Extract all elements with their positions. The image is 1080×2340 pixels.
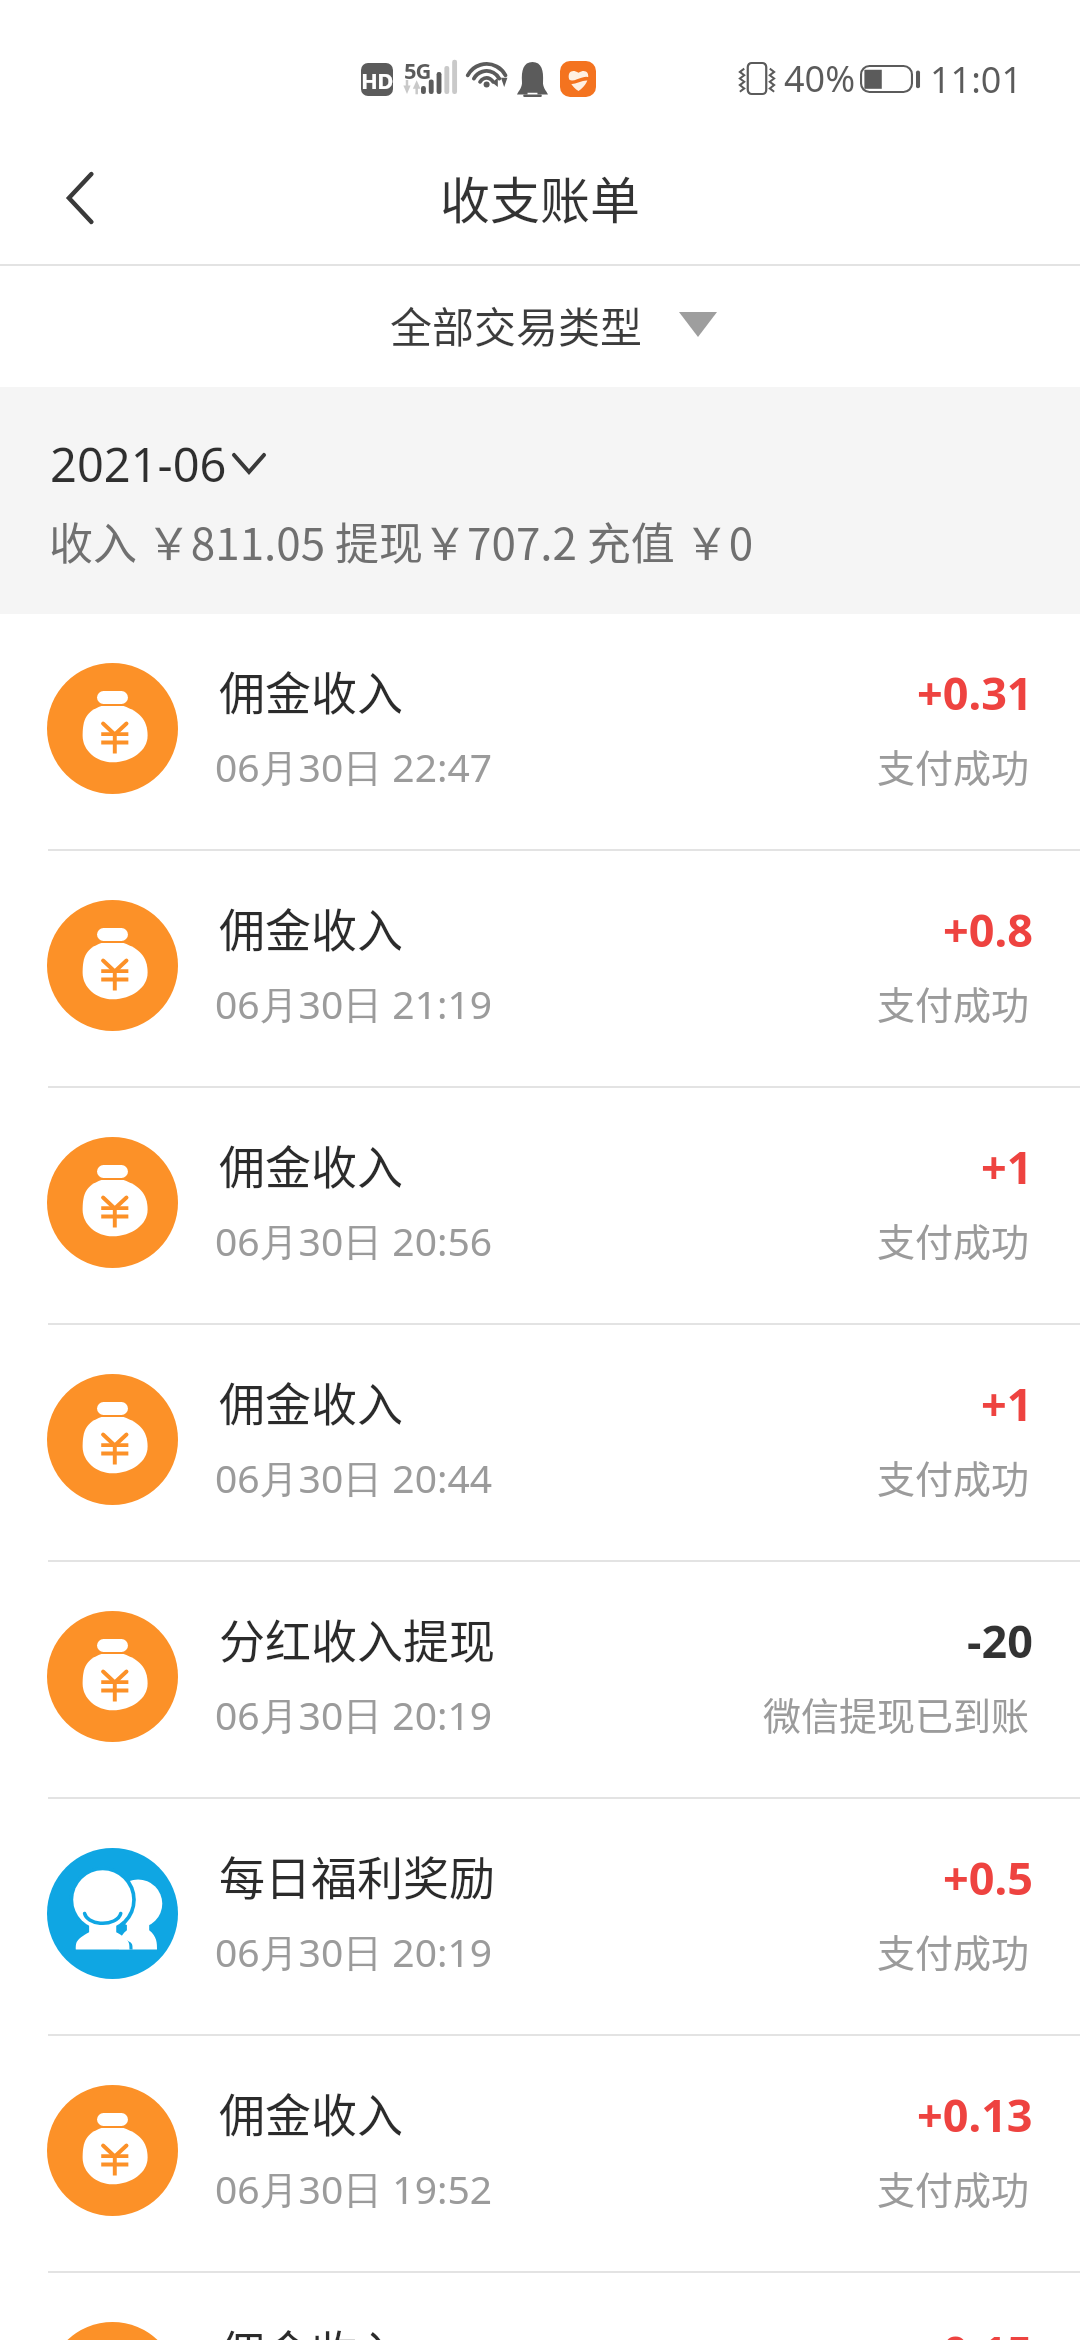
button[interactable]: 2021-06 — [34, 426, 280, 502]
button[interactable]: 佣金收入 — [0, 614, 1080, 849]
staticText: 佣金收入 — [219, 1368, 403, 1435]
button[interactable]: 佣金收入 — [0, 2036, 1080, 2271]
button[interactable]: 全部交易类型 — [370, 280, 737, 369]
staticText: +0.13 — [917, 2084, 1033, 2145]
staticText: 佣金收入 — [219, 894, 403, 961]
staticText: 06月30日 20:19 — [215, 1925, 493, 1978]
staticText: 佣金收入 — [219, 1131, 403, 1198]
button[interactable]: 佣金收入 — [0, 851, 1080, 1086]
staticText: 支付成功 — [877, 1212, 1030, 1267]
staticText: 5G — [404, 55, 431, 85]
button[interactable]: 分红收入提现 — [0, 1562, 1080, 1797]
staticText: 收支账单 — [440, 161, 640, 233]
staticText: 支付成功 — [877, 1923, 1030, 1978]
staticText: 06月30日 19:52 — [215, 2162, 493, 2215]
staticText: 11:01 — [930, 55, 1023, 104]
staticText: 分红收入提现 — [219, 1605, 495, 1672]
staticText: 06月30日 20:19 — [215, 1688, 493, 1741]
button[interactable]: 佣金收入 — [0, 1325, 1080, 1560]
staticText: 支付成功 — [877, 1449, 1030, 1504]
button[interactable]: 佣金收入 — [0, 2273, 1080, 2340]
staticText: 2021-06 — [50, 432, 227, 496]
button[interactable]: 每日福利奖励 — [0, 1799, 1080, 2034]
staticText: 支付成功 — [877, 975, 1030, 1030]
staticText: 支付成功 — [877, 2160, 1030, 2215]
staticText: 佣金收入 — [219, 2079, 403, 2146]
staticText: 佣金收入 — [219, 2316, 403, 2340]
staticText: 收入 ￥811.05 提现￥707.2 充值 ￥0 — [49, 509, 754, 573]
staticText: +1 — [981, 1136, 1033, 1197]
staticText: 06月30日 21:19 — [215, 977, 493, 1030]
staticText: +0.8 — [943, 899, 1033, 960]
staticText: +1 — [981, 1373, 1033, 1434]
staticText: 佣金收入 — [219, 657, 403, 724]
staticText: +0.15 — [917, 2321, 1033, 2340]
staticText: 支付成功 — [877, 738, 1030, 793]
staticText: +0.5 — [943, 1847, 1033, 1908]
staticText: 06月30日 20:56 — [215, 1214, 493, 1267]
staticText: 06月30日 20:44 — [215, 1451, 493, 1504]
staticText: 微信提现已到账 — [763, 1686, 1030, 1741]
staticText: 每日福利奖励 — [219, 1842, 495, 1909]
staticText: 全部交易类型 — [390, 294, 643, 355]
button[interactable]: Back — [31, 148, 131, 248]
staticText: -20 — [967, 1610, 1033, 1671]
staticText: 40% — [784, 54, 856, 103]
staticText: HD — [361, 65, 393, 95]
staticText: +0.31 — [917, 662, 1033, 723]
button[interactable]: 佣金收入 — [0, 1088, 1080, 1323]
staticText: 06月30日 22:47 — [215, 740, 493, 793]
